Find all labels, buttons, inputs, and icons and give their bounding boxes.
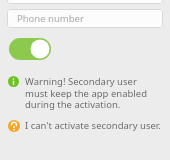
- other: Information: [8, 76, 19, 87]
- button[interactable]: Information: [8, 75, 162, 111]
- button[interactable]: Enable secondary user: [9, 38, 51, 60]
- staticText: Phone number: [17, 12, 84, 25]
- staticText: I can't activate secondary user.: [25, 119, 161, 132]
- other: Help: [8, 120, 20, 132]
- staticText: Warning! Secondary user must keep the ap…: [25, 75, 162, 111]
- button[interactable]: Help: [8, 119, 162, 132]
- button[interactable]: Phone number: [7, 9, 163, 28]
- button[interactable]: [7, 0, 163, 4]
